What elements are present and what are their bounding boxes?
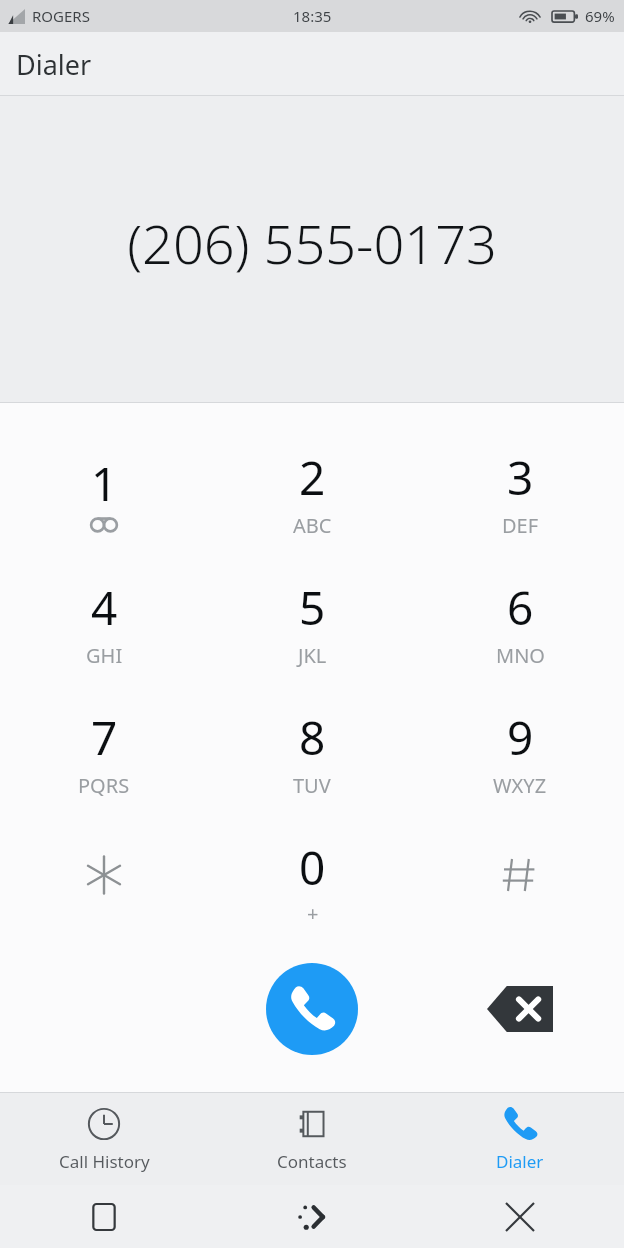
staticText: GHI: [86, 642, 123, 669]
button[interactable]: Close: [416, 1185, 624, 1248]
button[interactable]: Contacts: [208, 1093, 416, 1185]
staticText: 0: [299, 836, 326, 899]
button[interactable]: 5: [208, 557, 416, 687]
button[interactable]: Home: [208, 1185, 416, 1248]
staticText: PQRS: [78, 772, 130, 799]
button[interactable]: 7: [0, 687, 208, 817]
staticText: 2: [299, 446, 326, 509]
button[interactable]: 3: [416, 427, 624, 557]
staticText: ROGERS: [32, 6, 90, 26]
staticText: Dialer: [496, 1150, 544, 1173]
button[interactable]: 2: [208, 427, 416, 557]
button[interactable]: 4: [0, 557, 208, 687]
staticText: 6: [507, 576, 534, 639]
staticText: MNO: [496, 642, 545, 669]
staticText: 1: [91, 452, 118, 515]
staticText: ABC: [293, 512, 332, 539]
button[interactable]: Dialer: [416, 1093, 624, 1185]
button[interactable]: Call: [266, 963, 358, 1055]
button[interactable]: Delete: [480, 978, 560, 1040]
staticText: TUV: [293, 772, 331, 799]
staticText: 4: [91, 576, 118, 639]
button[interactable]: Call History: [0, 1093, 208, 1185]
staticText: 3: [507, 446, 534, 509]
staticText: 8: [299, 706, 326, 769]
staticText: Contacts: [277, 1150, 347, 1173]
button[interactable]: 0: [208, 817, 416, 945]
staticText: 9: [507, 706, 534, 769]
button[interactable]: Star: [0, 817, 208, 945]
staticText: Call History: [59, 1150, 150, 1173]
button[interactable]: 1: [0, 427, 208, 557]
staticText: 5: [299, 576, 326, 639]
button[interactable]: 6: [416, 557, 624, 687]
button[interactable]: Recents: [0, 1185, 208, 1248]
staticText: 18:35: [293, 6, 332, 26]
button[interactable]: 9: [416, 687, 624, 817]
button[interactable]: 8: [208, 687, 416, 817]
button[interactable]: Pound: [416, 817, 624, 945]
staticText: 69%: [585, 6, 615, 26]
staticText: JKL: [298, 642, 327, 669]
staticText: Dialer: [16, 46, 92, 83]
staticText: 7: [91, 706, 118, 769]
staticText: +: [307, 900, 319, 927]
staticText: (206) 555-0173: [0, 206, 624, 280]
staticText: DEF: [502, 512, 539, 539]
staticText: WXYZ: [493, 772, 547, 799]
